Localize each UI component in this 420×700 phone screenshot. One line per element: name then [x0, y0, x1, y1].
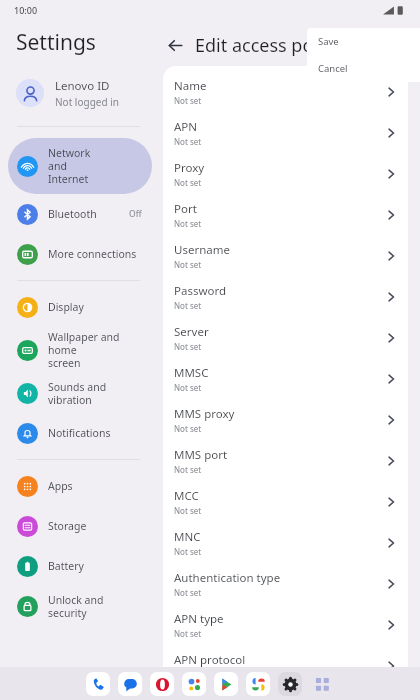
button[interactable]: Storage	[8, 506, 152, 546]
staticText: Not set	[174, 136, 202, 147]
staticText: Wallpaper and home screen	[48, 330, 142, 370]
button[interactable]: Password	[163, 276, 408, 317]
button[interactable]: Notifications	[8, 413, 152, 453]
staticText: APN protocol	[174, 652, 246, 668]
button[interactable]: MMSC	[163, 358, 408, 399]
staticText: Name	[174, 78, 207, 94]
staticText: Notifications	[48, 426, 142, 440]
button[interactable]: Settings	[278, 672, 302, 696]
staticText: Lenovo ID	[55, 78, 110, 94]
button[interactable]: Proxy	[163, 153, 408, 194]
button[interactable]: Apps	[8, 466, 152, 506]
button[interactable]: Wallpaper and home screen	[8, 327, 152, 373]
staticText: Not set	[174, 587, 202, 598]
button[interactable]: Username	[163, 235, 408, 276]
staticText: Display	[48, 300, 142, 314]
staticText: Bluetooth	[48, 207, 129, 221]
button[interactable]: APN	[163, 112, 408, 153]
staticText: Apps	[48, 479, 142, 493]
staticText: Not set	[174, 259, 202, 270]
button[interactable]: Battery	[8, 546, 152, 586]
staticText: Battery	[48, 559, 142, 573]
staticText: MCC	[174, 488, 199, 504]
staticText: Authentication type	[174, 570, 281, 586]
button[interactable]: Cancel	[307, 55, 420, 82]
button[interactable]: MNC	[163, 522, 408, 563]
button[interactable]: Port	[163, 194, 408, 235]
staticText: Network and Internet	[48, 146, 142, 186]
staticText: Edit access point	[195, 33, 336, 58]
staticText: Port	[174, 201, 197, 217]
staticText: Cancel	[318, 62, 348, 75]
staticText: Off	[129, 208, 142, 220]
staticText: 10:00	[14, 4, 38, 16]
button[interactable]: Authentication type	[163, 563, 408, 604]
button[interactable]: All apps	[310, 672, 334, 696]
button[interactable]: Phone	[86, 672, 110, 696]
staticText: Unlock and security	[48, 593, 142, 620]
staticText: MNC	[174, 529, 201, 545]
button[interactable]: Unlock and security	[8, 586, 152, 626]
staticText: Not set	[174, 546, 202, 557]
button[interactable]: MCC	[163, 481, 408, 522]
staticText: APN type	[174, 611, 224, 627]
staticText: Not logged in	[55, 95, 119, 109]
staticText: Settings	[16, 28, 96, 57]
button[interactable]: Play Store	[214, 672, 238, 696]
button[interactable]: Network and Internet	[8, 138, 152, 194]
staticText: Not set	[174, 300, 202, 311]
staticText: Not set	[174, 341, 202, 352]
button[interactable]: Save	[307, 28, 420, 55]
button[interactable]: Back	[163, 33, 187, 57]
staticText: Sounds and vibration	[48, 380, 142, 407]
button[interactable]: Name	[163, 71, 408, 112]
button[interactable]: Sounds and vibration	[8, 373, 152, 413]
staticText: Not set	[174, 505, 202, 516]
staticText: Password	[174, 283, 227, 299]
button[interactable]: MMS proxy	[163, 399, 408, 440]
staticText: Not set	[174, 628, 202, 639]
button[interactable]: APN type	[163, 604, 408, 645]
staticText: MMS port	[174, 447, 228, 463]
staticText: Not set	[174, 218, 202, 229]
button[interactable]: Photos	[246, 672, 270, 696]
staticText: Not set	[174, 95, 202, 106]
staticText: More connections	[48, 247, 142, 261]
staticText: MMSC	[174, 365, 209, 381]
button[interactable]: Lenovo ID	[0, 71, 160, 115]
staticText: APN roaming protocol	[174, 686, 294, 700]
staticText: APN	[174, 119, 198, 135]
button[interactable]: Server	[163, 317, 408, 358]
button[interactable]: Messages	[118, 672, 142, 696]
staticText: Save	[318, 35, 339, 48]
button[interactable]: APN roaming protocol	[163, 686, 408, 700]
staticText: Server	[174, 324, 209, 340]
staticText: Username	[174, 242, 230, 258]
button[interactable]: More connections	[8, 234, 152, 274]
button[interactable]: Assistant	[182, 672, 206, 696]
staticText: Not set	[174, 669, 202, 680]
staticText: MMS proxy	[174, 406, 235, 422]
button[interactable]: APN protocol	[163, 645, 408, 686]
button[interactable]: MMS port	[163, 440, 408, 481]
staticText: Not set	[174, 464, 202, 475]
button[interactable]: Opera	[150, 672, 174, 696]
staticText: Not set	[174, 423, 202, 434]
staticText: Not set	[174, 177, 202, 188]
staticText: Not set	[174, 382, 202, 393]
button[interactable]: Display	[8, 287, 152, 327]
button[interactable]: Bluetooth	[8, 194, 152, 234]
staticText: Proxy	[174, 160, 205, 176]
staticText: Storage	[48, 519, 142, 533]
